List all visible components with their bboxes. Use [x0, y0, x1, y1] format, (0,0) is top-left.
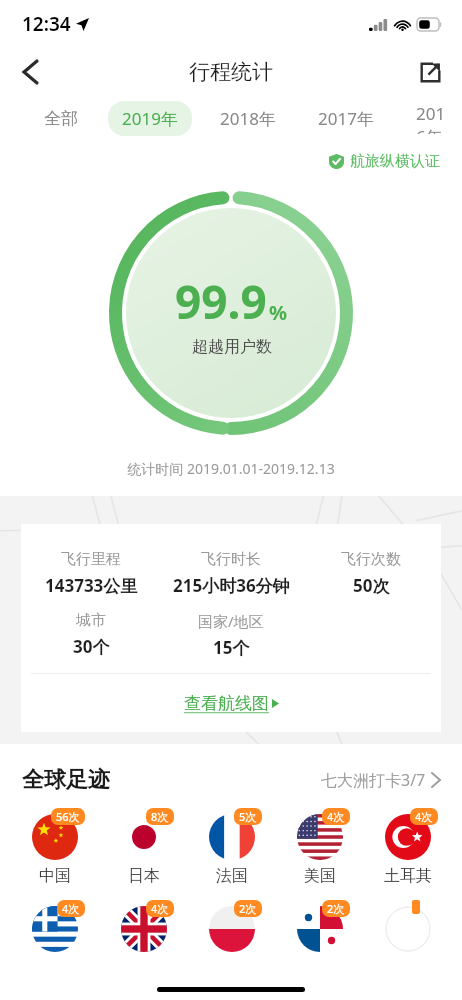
staticText: % [269, 299, 288, 326]
button[interactable]: 2次 [276, 900, 364, 952]
staticText: 超越用户数 [192, 337, 272, 357]
staticText: 土耳其 [384, 866, 432, 886]
staticText: 56次 [56, 809, 80, 824]
staticText: 飞行里程 [61, 550, 121, 569]
button[interactable]: 56次 [10, 808, 99, 886]
staticText: 143733公里 [45, 574, 138, 597]
staticText: 215小时36分钟 [173, 574, 290, 597]
button[interactable]: 4次 [364, 808, 452, 886]
staticText: 法国 [216, 866, 248, 886]
button[interactable]: 2018年 [206, 101, 290, 136]
button[interactable]: 4次 [99, 900, 188, 952]
staticText: 2018年 [220, 107, 276, 130]
staticText: 飞行时长 [201, 550, 261, 569]
staticText: 航旅纵横认证 [350, 152, 440, 171]
staticText: 30个 [73, 635, 110, 658]
staticText: 4次 [415, 809, 433, 824]
staticText: 七大洲打卡3/7 [321, 769, 426, 791]
staticText: 2016年 [416, 102, 448, 134]
staticText: 全部 [44, 108, 78, 129]
button[interactable]: 2019年 [108, 101, 192, 136]
staticText: 15个 [213, 636, 250, 659]
staticText: 2017年 [318, 107, 374, 130]
button[interactable]: 查看航线图 [21, 674, 441, 732]
button[interactable]: 2016年 [402, 96, 462, 140]
button[interactable]: Back [8, 50, 52, 94]
button[interactable]: 5次 [188, 808, 276, 886]
staticText: 城市 [76, 611, 106, 630]
staticText: 统计时间 2019.01.01-2019.12.13 [0, 459, 462, 478]
staticText: 全球足迹 [22, 766, 110, 794]
staticText: 8次 [151, 809, 169, 824]
staticText: 4次 [327, 809, 345, 824]
staticText: 50次 [353, 574, 390, 597]
button[interactable]: 4次 [276, 808, 364, 886]
button[interactable]: 8次 [99, 808, 188, 886]
staticText: 12:34 [22, 11, 71, 37]
button[interactable]: 七大洲打卡3/7 [321, 769, 440, 791]
button[interactable] [364, 900, 452, 952]
staticText: 查看航线图 [184, 693, 269, 714]
staticText: 中国 [39, 866, 71, 886]
button[interactable]: 2017年 [304, 101, 388, 136]
button[interactable]: 4次 [10, 900, 99, 952]
staticText: 日本 [128, 866, 160, 886]
staticText: 4次 [151, 901, 169, 916]
staticText: 美国 [304, 866, 336, 886]
staticText: 飞行次数 [341, 550, 401, 569]
staticText: 2019年 [122, 107, 178, 130]
staticText: 99.9 [175, 270, 267, 333]
button[interactable]: 全部 [30, 102, 92, 135]
staticText: 2次 [327, 901, 345, 916]
staticText: 2次 [239, 901, 257, 916]
staticText: 国家/地区 [198, 611, 264, 631]
staticText: 行程统计 [189, 59, 273, 85]
staticText: 4次 [62, 901, 80, 916]
button[interactable]: 2次 [188, 900, 276, 952]
button[interactable]: Share [408, 50, 452, 94]
staticText: 5次 [239, 809, 257, 824]
